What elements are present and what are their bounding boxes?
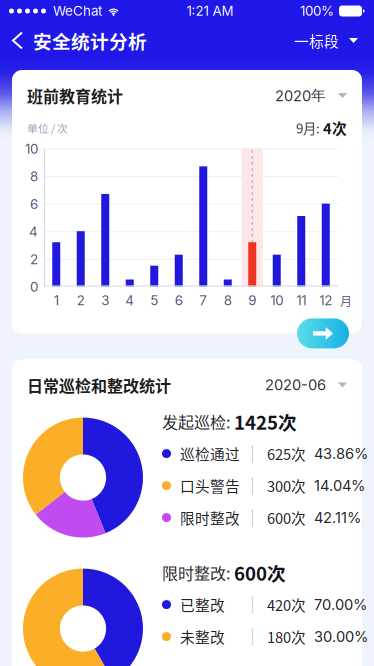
staticText: 巡检通过 [180,443,240,464]
staticText: 未整改 [180,626,225,647]
staticText: 日常巡检和整改统计 [27,373,171,397]
button[interactable]: 一标段 [294,22,374,59]
staticText: | [250,477,255,494]
staticText: | [250,445,255,462]
staticText: 6 [30,196,38,212]
staticText: 180次 [267,626,306,647]
staticText: 0 [30,279,38,295]
staticText: 单位 / 次 [27,120,68,135]
staticText: 2020年 [275,86,326,105]
staticText: 8 [224,292,232,308]
staticText: WeChat [53,3,102,19]
staticText: 口头警告 [180,475,240,496]
staticText: 420次 [267,594,306,615]
staticText: 42.11% [314,509,361,526]
staticText: 4次 [320,117,347,138]
staticText: 7 [199,292,207,308]
staticText: 1:21 AM [186,3,233,19]
staticText: 8 [30,168,38,184]
staticText: 600次 [230,559,286,586]
staticText: 3 [101,292,109,308]
staticText: | [250,596,255,613]
staticText: 5 [150,292,158,308]
staticText: 12 [319,292,332,308]
staticText: 43.86% [314,445,368,462]
staticText: 600次 [267,507,306,528]
staticText: 1425次 [230,408,297,435]
staticText: 30.00% [314,628,368,645]
staticText: 发起巡检: [162,410,230,433]
staticText: 625次 [267,443,306,464]
staticText: 10 [25,141,38,157]
staticText: 4 [29,224,38,240]
staticText: 2 [77,292,85,308]
staticText: 1 [54,292,59,308]
staticText: 70.00% [314,596,367,613]
staticText: 限时整改 [180,507,240,528]
staticText: 6 [175,292,183,308]
staticText: 一标段 [294,30,339,51]
staticText: 11 [296,292,306,308]
staticText: 300次 [267,475,306,496]
button[interactable]: 2020年 [275,86,347,105]
staticText: | [250,628,255,645]
staticText: 9月: [296,118,320,137]
staticText: 14.04% [314,477,365,494]
staticText: 4 [125,292,134,308]
button[interactable]: Back [0,22,33,59]
staticText: 9 [248,292,256,308]
staticText: | [250,509,255,526]
staticText: 限时整改: [162,561,230,584]
button[interactable]: 2020-06 [265,376,347,394]
button[interactable]: Next [297,318,349,348]
staticText: 10 [270,292,283,308]
staticText: 班前教育统计 [27,84,123,107]
staticText: 月 [340,292,352,309]
staticText: 100% [300,3,334,19]
staticText: 2020-06 [265,376,326,394]
staticText: 2 [30,251,38,267]
staticText: 安全统计分析 [33,27,147,54]
staticText: 已整改 [180,594,225,615]
